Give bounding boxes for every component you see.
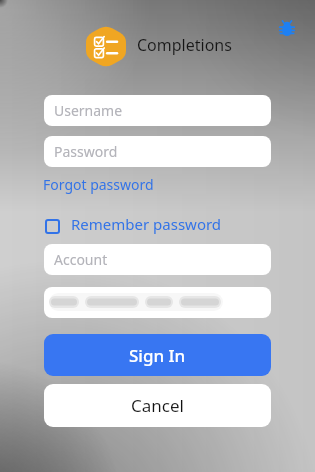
button[interactable]: Password: [44, 136, 271, 167]
staticText: Account: [54, 250, 108, 269]
staticText: Password: [54, 142, 118, 161]
button[interactable]: Cancel: [44, 384, 271, 427]
staticText: Completions: [137, 34, 232, 56]
button[interactable]: Remember password: [45, 214, 222, 234]
button[interactable]: [279, 19, 295, 37]
button[interactable]: [44, 287, 271, 318]
staticText: Username: [54, 101, 123, 120]
staticText: Remember password: [71, 214, 222, 234]
staticText: Cancel: [131, 394, 184, 417]
button[interactable]: Username: [44, 95, 271, 126]
button[interactable]: Sign In: [44, 334, 271, 376]
button[interactable]: Account: [44, 244, 271, 275]
staticText: Sign In: [129, 344, 186, 367]
button[interactable]: Forgot password: [43, 175, 154, 194]
